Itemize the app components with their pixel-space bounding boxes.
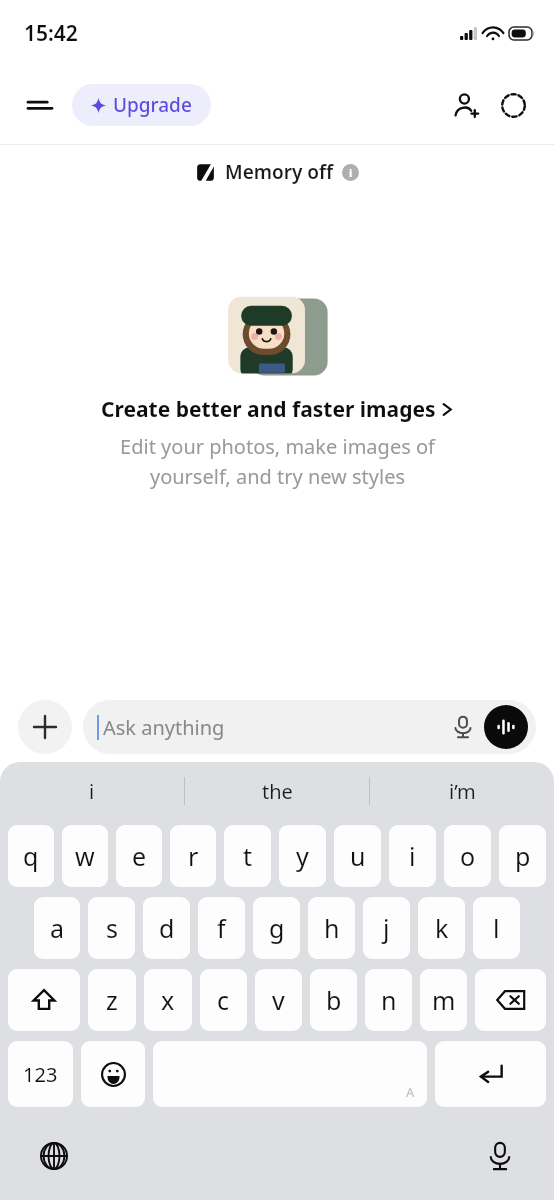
button[interactable]: u: [334, 825, 381, 887]
button[interactable]: Upgrade: [72, 84, 211, 126]
button[interactable]: y: [279, 825, 326, 887]
staticText: i: [349, 165, 353, 180]
staticText: Memory off: [225, 159, 334, 185]
button[interactable]: x: [144, 969, 192, 1031]
button[interactable]: i: [389, 825, 436, 887]
button[interactable]: Menu: [18, 83, 62, 127]
other: Info: [342, 164, 359, 181]
staticText: j: [383, 911, 390, 945]
button[interactable]: Change language: [30, 1132, 78, 1180]
staticText: n: [381, 983, 397, 1017]
staticText: s: [106, 911, 118, 945]
button[interactable]: Dictate: [444, 708, 482, 746]
staticText: x: [161, 983, 175, 1017]
button[interactable]: s: [88, 897, 135, 959]
button[interactable]: Backspace: [475, 969, 546, 1031]
staticText: p: [515, 839, 531, 873]
button[interactable]: Temporary chat: [490, 82, 536, 128]
button[interactable]: [222, 289, 332, 381]
button[interactable]: d: [143, 897, 190, 959]
button[interactable]: Voice input: [476, 1132, 524, 1180]
staticText: m: [432, 983, 456, 1017]
staticText: Edit your photos, make images of yoursel…: [120, 433, 435, 490]
button[interactable]: z: [88, 969, 136, 1031]
staticText: t: [243, 839, 253, 873]
staticText: i: [89, 778, 95, 805]
button[interactable]: Voice mode: [484, 705, 528, 749]
button[interactable]: Create better and faster images: [101, 395, 453, 424]
staticText: v: [272, 983, 285, 1017]
button[interactable]: m: [420, 969, 467, 1031]
button[interactable]: e: [116, 825, 162, 887]
staticText: b: [326, 983, 342, 1017]
staticText: z: [106, 983, 118, 1017]
button[interactable]: t: [224, 825, 271, 887]
staticText: A: [406, 1083, 415, 1101]
staticText: y: [296, 839, 309, 873]
button[interactable]: i’m: [370, 762, 554, 820]
button[interactable]: r: [170, 825, 216, 887]
button[interactable]: c: [200, 969, 247, 1031]
button[interactable]: q: [8, 825, 54, 887]
staticText: l: [493, 911, 500, 945]
button[interactable]: p: [499, 825, 546, 887]
button[interactable]: i: [0, 762, 184, 820]
button[interactable]: v: [255, 969, 302, 1031]
button[interactable]: 123: [8, 1041, 73, 1107]
button[interactable]: g: [253, 897, 300, 959]
staticText: o: [460, 839, 476, 873]
button[interactable]: b: [310, 969, 357, 1031]
button[interactable]: Ask anything: [83, 700, 536, 754]
staticText: u: [350, 839, 366, 873]
button[interactable]: Add attachment: [18, 700, 72, 754]
button[interactable]: the: [185, 762, 369, 820]
staticText: c: [217, 983, 230, 1017]
staticText: 15:42: [24, 19, 78, 48]
button[interactable]: Emoji: [81, 1041, 145, 1107]
staticText: 123: [23, 1061, 58, 1088]
button[interactable]: Memory off: [0, 145, 554, 199]
button[interactable]: w: [62, 825, 108, 887]
staticText: k: [435, 911, 449, 945]
staticText: q: [23, 839, 39, 873]
staticText: f: [217, 911, 226, 945]
staticText: r: [188, 839, 199, 873]
staticText: Upgrade: [113, 92, 192, 118]
button[interactable]: j: [363, 897, 410, 959]
button[interactable]: k: [418, 897, 465, 959]
staticText: a: [50, 911, 65, 945]
button[interactable]: Enter: [435, 1041, 546, 1107]
staticText: d: [159, 911, 175, 945]
staticText: Create better and faster images: [101, 395, 436, 424]
staticText: i’m: [449, 778, 476, 805]
button[interactable]: h: [308, 897, 355, 959]
staticText: h: [324, 911, 340, 945]
staticText: e: [132, 839, 147, 873]
button[interactable]: o: [444, 825, 491, 887]
button[interactable]: n: [365, 969, 412, 1031]
staticText: w: [75, 839, 95, 873]
button[interactable]: a: [34, 897, 80, 959]
staticText: the: [262, 778, 293, 805]
staticText: g: [269, 911, 285, 945]
staticText: i: [409, 839, 416, 873]
button[interactable]: f: [198, 897, 245, 959]
button[interactable]: Add people: [444, 82, 490, 128]
button[interactable]: Shift: [8, 969, 80, 1031]
button[interactable]: l: [473, 897, 520, 959]
staticText: Ask anything: [103, 714, 225, 741]
